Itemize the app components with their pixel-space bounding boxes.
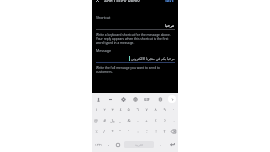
button[interactable]: ٧	[142, 104, 151, 115]
staticText: GIF	[144, 97, 150, 102]
staticText: ؛	[146, 129, 148, 134]
staticText: ٪	[95, 129, 98, 134]
button[interactable]: ،	[105, 137, 113, 152]
button[interactable]: Emoji	[113, 137, 122, 152]
staticText: Message	[96, 48, 111, 53]
staticText: ،	[108, 142, 110, 147]
staticText: Write a keyboard shortcut for the messag…	[96, 33, 175, 45]
button[interactable]: Settings	[119, 95, 127, 103]
button[interactable]: &	[124, 115, 133, 126]
staticText: +	[145, 118, 148, 124]
button[interactable]: ٨	[151, 104, 160, 115]
button[interactable]: ؛	[142, 126, 151, 137]
staticText: ٨	[154, 107, 157, 112]
button[interactable]: ٣	[108, 104, 116, 115]
button[interactable]: Enter	[166, 137, 178, 152]
staticText: ١	[95, 107, 98, 112]
button[interactable]: ١	[92, 104, 100, 115]
staticText: ٧	[145, 107, 148, 112]
button[interactable]: ؟١٢٣	[92, 137, 105, 152]
button[interactable]: ٪	[92, 126, 100, 137]
staticText: &	[127, 118, 131, 124]
button[interactable]: @	[92, 115, 100, 126]
staticText: -	[137, 118, 139, 124]
button[interactable]: Backspace	[169, 126, 178, 137]
button[interactable]: Clipboard	[156, 95, 164, 103]
button[interactable]: /	[100, 126, 108, 137]
staticText: ٩	[163, 107, 166, 112]
staticText: .	[160, 142, 162, 147]
staticText: Write the full message you want to send …	[96, 66, 175, 74]
button[interactable]: #	[100, 115, 108, 126]
staticText: ٥	[127, 107, 130, 112]
staticText: "	[119, 129, 121, 134]
staticText: ؟١٢٣	[95, 143, 102, 147]
button[interactable]: Close	[95, 0, 100, 2]
button[interactable]: Theme	[106, 95, 114, 103]
button[interactable]: العربية	[124, 141, 154, 148]
staticText: ٢	[103, 107, 106, 112]
button[interactable]: '	[124, 126, 133, 137]
staticText: )	[164, 118, 166, 124]
button[interactable]: +	[142, 115, 151, 126]
button[interactable]: ﷼	[108, 115, 116, 126]
button[interactable]: ٦	[133, 104, 142, 115]
button[interactable]: !	[151, 126, 160, 137]
button[interactable]: ؟	[160, 126, 169, 137]
button[interactable]: ٢	[100, 104, 108, 115]
staticText: :	[137, 129, 139, 134]
button[interactable]: (	[151, 115, 160, 126]
button[interactable]: ٩	[160, 104, 169, 115]
button[interactable]: More tools	[168, 95, 176, 103]
staticText: مرحبا	[165, 23, 175, 28]
button[interactable]: ٥	[124, 104, 133, 115]
staticText: Shortcut	[96, 15, 111, 20]
staticText: #	[103, 118, 106, 124]
staticText: ؟	[163, 129, 166, 134]
staticText: SAVE	[165, 0, 174, 2]
staticText: .	[173, 118, 175, 124]
staticText: *	[111, 129, 114, 134]
button[interactable]: GIF	[143, 95, 151, 103]
staticText: مرحبا بكم في متجرنا الالكتروني	[131, 56, 175, 61]
staticText: ٦	[136, 107, 139, 112]
staticText: ٤	[119, 107, 122, 112]
staticText: العربية	[135, 143, 144, 146]
staticText: ٠	[172, 107, 175, 112]
button[interactable]: "	[116, 126, 124, 137]
staticText: @	[94, 118, 98, 124]
button[interactable]: ٤	[116, 104, 124, 115]
button[interactable]: SAVE	[165, 0, 174, 2]
staticText: /	[103, 129, 105, 134]
button[interactable]: _	[116, 115, 124, 126]
button[interactable]: )	[160, 115, 169, 126]
staticText: (	[155, 118, 157, 124]
staticText: !	[155, 129, 157, 134]
button[interactable]: Stickers	[131, 95, 139, 103]
staticText: ﷼	[110, 119, 115, 123]
button[interactable]: Voice input	[94, 95, 102, 103]
staticText: '	[128, 129, 129, 134]
button[interactable]: *	[108, 126, 116, 137]
staticText: Add Quick Reply	[104, 0, 140, 2]
staticText: _	[119, 118, 121, 124]
staticText: ٣	[111, 107, 114, 112]
